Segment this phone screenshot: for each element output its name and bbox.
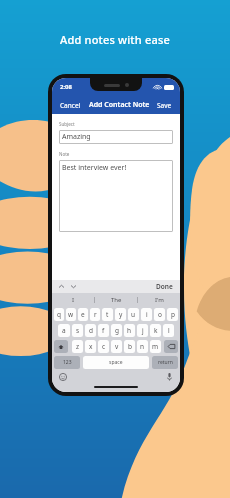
- button[interactable]: v: [111, 340, 122, 353]
- button[interactable]: Cancel: [58, 99, 83, 112]
- button[interactable]: d: [85, 324, 96, 337]
- button[interactable]: q: [54, 308, 64, 321]
- staticText: I'm: [155, 296, 164, 304]
- staticText: e: [81, 310, 85, 319]
- staticText: d: [89, 326, 93, 335]
- button[interactable]: w: [66, 308, 76, 321]
- button[interactable]: I: [52, 293, 94, 306]
- button[interactable]: e: [78, 308, 88, 321]
- button[interactable]: Shift: [54, 340, 68, 353]
- button[interactable]: j: [137, 324, 148, 337]
- button[interactable]: g: [111, 324, 122, 337]
- staticText: Best interview ever!: [62, 163, 127, 173]
- staticText: Amazing: [62, 132, 91, 142]
- button[interactable]: y: [115, 308, 126, 321]
- staticText: s: [76, 326, 80, 335]
- staticText: q: [57, 310, 61, 319]
- button[interactable]: Dictate: [164, 371, 175, 382]
- button[interactable]: s: [72, 324, 83, 337]
- button[interactable]: space: [83, 356, 149, 369]
- button[interactable]: f: [98, 324, 109, 337]
- button[interactable]: z: [72, 340, 83, 353]
- button[interactable]: Save: [155, 99, 174, 112]
- button[interactable]: i: [141, 308, 152, 321]
- button[interactable]: return: [152, 356, 178, 369]
- button[interactable]: 123: [54, 356, 80, 369]
- button[interactable]: The: [95, 293, 137, 306]
- staticText: space: [109, 359, 123, 366]
- staticText: y: [119, 310, 123, 319]
- staticText: g: [115, 326, 119, 335]
- staticText: w: [68, 310, 74, 319]
- staticText: v: [115, 342, 119, 351]
- staticText: m: [152, 342, 159, 351]
- staticText: z: [76, 342, 80, 351]
- staticText: x: [89, 342, 93, 351]
- staticText: I: [72, 296, 75, 304]
- staticText: Note: [59, 151, 70, 157]
- staticText: h: [127, 326, 132, 335]
- staticText: Add Contact Note: [89, 100, 150, 110]
- button[interactable]: b: [124, 340, 135, 353]
- button[interactable]: u: [128, 308, 139, 321]
- button[interactable]: Amazing: [59, 130, 173, 144]
- staticText: k: [154, 326, 158, 335]
- staticText: Subject: [59, 121, 75, 127]
- staticText: 123: [63, 359, 72, 366]
- button[interactable]: I'm: [138, 293, 180, 306]
- button[interactable]: Done: [154, 280, 175, 293]
- staticText: Cancel: [60, 101, 81, 110]
- button[interactable]: x: [85, 340, 96, 353]
- button[interactable]: c: [98, 340, 109, 353]
- button[interactable]: r: [90, 308, 100, 321]
- staticText: f: [102, 326, 105, 335]
- staticText: c: [102, 342, 106, 351]
- staticText: n: [140, 342, 145, 351]
- staticText: i: [146, 310, 148, 319]
- staticText: o: [158, 310, 162, 319]
- button[interactable]: t: [102, 308, 113, 321]
- staticText: return: [158, 359, 173, 366]
- button[interactable]: p: [167, 308, 178, 321]
- staticText: Done: [156, 282, 173, 291]
- staticText: 2:08: [60, 83, 72, 91]
- staticText: p: [171, 310, 175, 319]
- button[interactable]: h: [124, 324, 135, 337]
- staticText: t: [106, 310, 109, 319]
- staticText: Add notes with ease: [60, 32, 170, 47]
- button[interactable]: Delete: [164, 340, 178, 353]
- staticText: b: [128, 342, 132, 351]
- staticText: l: [168, 326, 170, 335]
- button[interactable]: m: [150, 340, 161, 353]
- staticText: r: [94, 310, 97, 319]
- staticText: j: [142, 326, 144, 335]
- button[interactable]: a: [58, 324, 70, 337]
- staticText: a: [62, 326, 66, 335]
- button[interactable]: Emoji: [57, 371, 68, 382]
- staticText: The: [111, 296, 122, 304]
- staticText: Save: [157, 101, 172, 110]
- staticText: u: [131, 310, 136, 319]
- button[interactable]: o: [154, 308, 165, 321]
- button[interactable]: Best interview ever!: [59, 160, 173, 232]
- button[interactable]: Previous field: [57, 282, 66, 291]
- button[interactable]: l: [163, 324, 174, 337]
- button[interactable]: Next field: [69, 282, 78, 291]
- button[interactable]: n: [137, 340, 148, 353]
- button[interactable]: k: [150, 324, 161, 337]
